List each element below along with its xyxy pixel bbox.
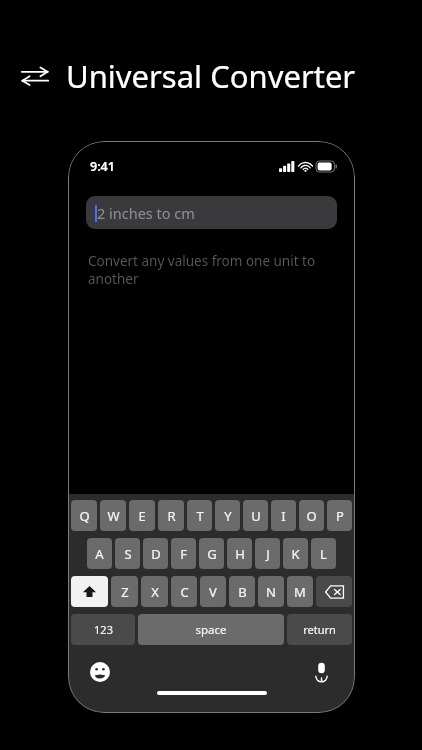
button[interactable]: Q bbox=[71, 500, 97, 531]
staticText: B bbox=[238, 583, 247, 601]
button[interactable]: Dictate bbox=[309, 660, 333, 684]
button[interactable]: L bbox=[311, 538, 336, 569]
button[interactable]: H bbox=[227, 538, 252, 569]
button[interactable]: space bbox=[138, 614, 284, 645]
staticText: N bbox=[266, 583, 276, 601]
staticText: space bbox=[195, 622, 227, 638]
staticText: M bbox=[294, 583, 306, 601]
staticText: L bbox=[320, 545, 327, 563]
staticText: X bbox=[151, 583, 159, 601]
staticText: W bbox=[107, 507, 120, 525]
staticText: P bbox=[336, 507, 344, 525]
button[interactable]: N bbox=[258, 576, 284, 607]
staticText: G bbox=[207, 545, 217, 563]
button[interactable]: V bbox=[200, 576, 226, 607]
staticText: S bbox=[124, 545, 132, 563]
button[interactable]: M bbox=[287, 576, 313, 607]
staticText: Universal Converter bbox=[66, 55, 356, 97]
staticText: A bbox=[95, 545, 104, 563]
staticText: C bbox=[180, 583, 189, 601]
button[interactable]: X bbox=[141, 576, 168, 607]
button[interactable]: I bbox=[271, 500, 296, 531]
staticText: 2 inches to cm bbox=[97, 203, 195, 223]
staticText: H bbox=[235, 545, 245, 563]
staticText: E bbox=[138, 507, 146, 525]
other: Swap units bbox=[20, 63, 50, 89]
button[interactable]: Backspace bbox=[316, 576, 352, 607]
button[interactable]: S bbox=[115, 538, 140, 569]
button[interactable]: F bbox=[171, 538, 196, 569]
staticText: 9:41 bbox=[90, 158, 115, 175]
button[interactable]: T bbox=[187, 500, 212, 531]
staticText: F bbox=[180, 545, 187, 563]
staticText: I bbox=[281, 507, 286, 525]
button[interactable]: Shift bbox=[71, 576, 108, 607]
button[interactable]: Emoji bbox=[88, 660, 112, 684]
staticText: Convert any values from one unit to anot… bbox=[88, 252, 335, 288]
button[interactable]: B bbox=[229, 576, 255, 607]
button[interactable]: E bbox=[129, 500, 155, 531]
button[interactable]: R bbox=[158, 500, 184, 531]
staticText: K bbox=[291, 545, 300, 563]
button[interactable]: D bbox=[143, 538, 168, 569]
staticText: T bbox=[196, 507, 204, 525]
button[interactable]: K bbox=[283, 538, 308, 569]
button[interactable]: G bbox=[199, 538, 224, 569]
staticText: U bbox=[251, 507, 261, 525]
button[interactable]: A bbox=[87, 538, 112, 569]
button[interactable]: C bbox=[171, 576, 197, 607]
staticText: Y bbox=[224, 507, 232, 525]
staticText: V bbox=[209, 583, 217, 601]
button[interactable]: W bbox=[100, 500, 126, 531]
button[interactable]: 2 inches to cm bbox=[86, 196, 337, 229]
button[interactable]: Z bbox=[111, 576, 138, 607]
staticText: 123 bbox=[94, 622, 113, 637]
button[interactable]: 123 bbox=[71, 614, 135, 645]
staticText: return bbox=[303, 622, 336, 637]
staticText: Z bbox=[121, 583, 129, 601]
button[interactable]: O bbox=[299, 500, 324, 531]
staticText: D bbox=[151, 545, 161, 563]
button[interactable]: return bbox=[287, 614, 352, 645]
staticText: R bbox=[167, 507, 176, 525]
button[interactable]: P bbox=[327, 500, 352, 531]
staticText: J bbox=[266, 545, 270, 563]
staticText: O bbox=[306, 507, 317, 525]
staticText: Q bbox=[79, 507, 90, 525]
button[interactable]: J bbox=[255, 538, 280, 569]
button[interactable]: U bbox=[243, 500, 268, 531]
button[interactable]: Y bbox=[215, 500, 240, 531]
